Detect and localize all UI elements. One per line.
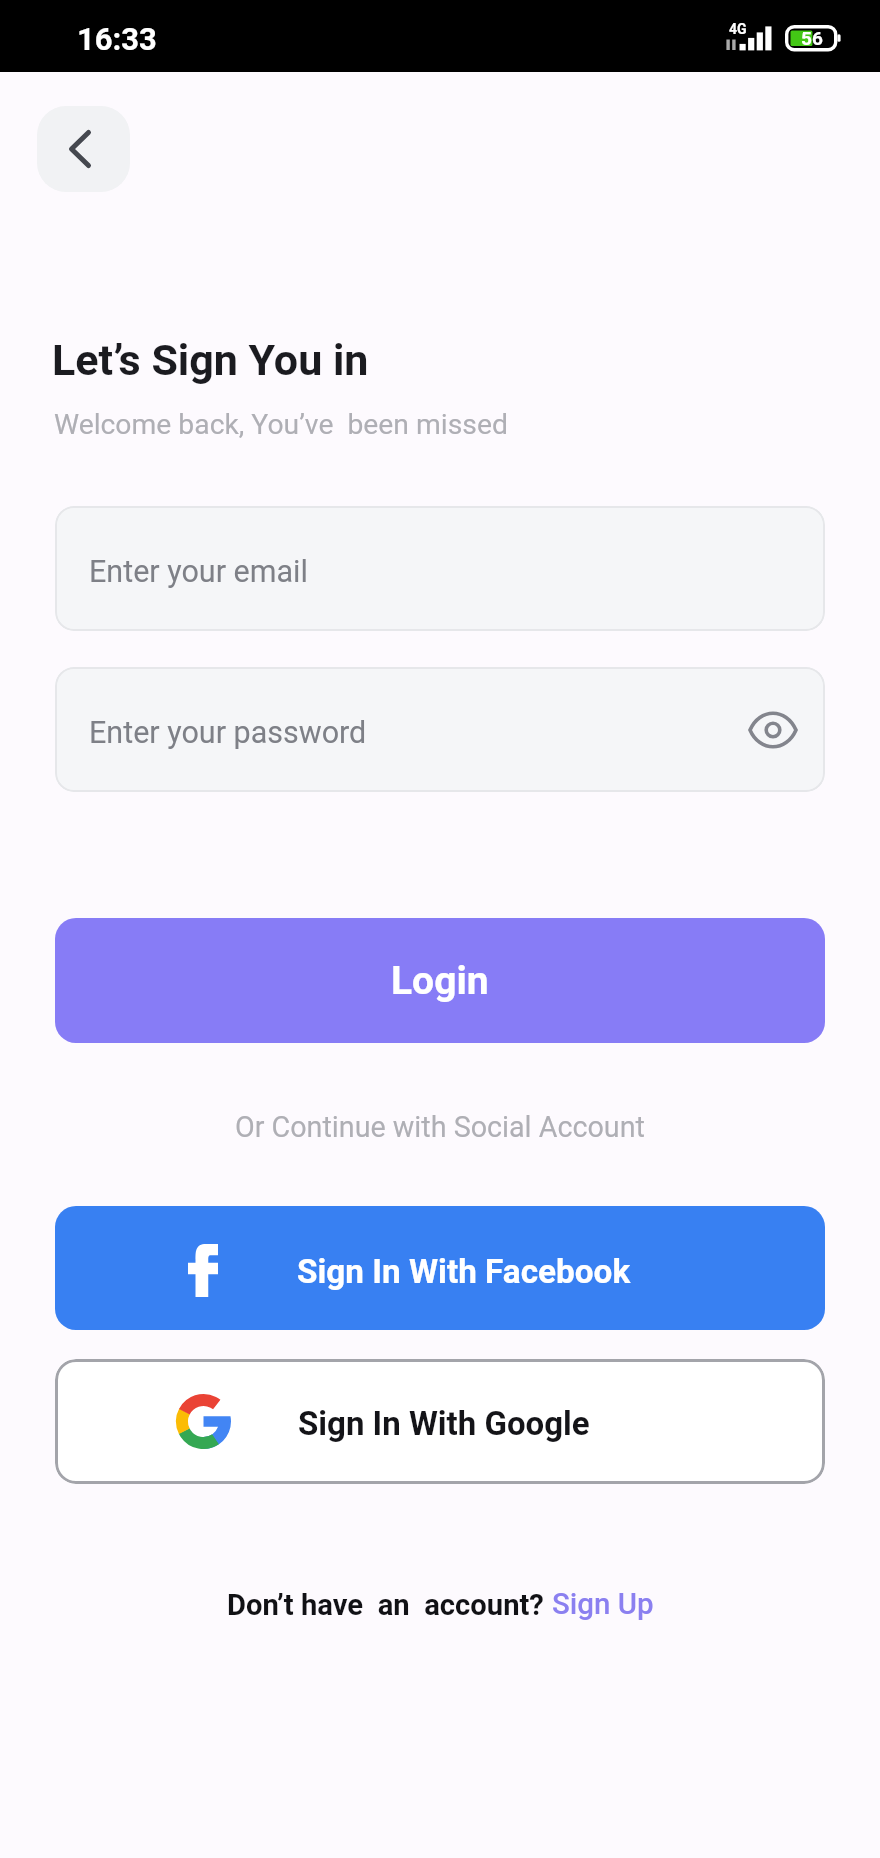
- button[interactable]: Sign In With Facebook: [55, 1206, 825, 1330]
- staticText: Sign In With Google: [298, 1404, 590, 1443]
- staticText: Login: [391, 958, 489, 1004]
- staticText: 16:33: [77, 21, 157, 57]
- staticText: Sign Up: [552, 1587, 654, 1622]
- staticText: Sign In With Facebook: [297, 1252, 631, 1291]
- staticText: Let’s Sign You in: [52, 335, 369, 385]
- button[interactable]: Show password: [742, 699, 804, 761]
- staticText: Enter your password: [89, 715, 367, 751]
- button[interactable]: Back: [37, 106, 130, 192]
- staticText: Enter your email: [89, 554, 308, 590]
- button[interactable]: Enter your email: [55, 506, 825, 631]
- staticText: 4G: [729, 21, 747, 37]
- staticText: Don’t have an account?: [227, 1588, 552, 1622]
- button[interactable]: Sign Up: [552, 1587, 654, 1622]
- button[interactable]: Sign In With Google: [55, 1359, 825, 1484]
- staticText: Welcome back, You’ve been missed: [54, 408, 508, 441]
- button[interactable]: Login: [55, 918, 825, 1043]
- staticText: 56: [801, 27, 823, 49]
- button[interactable]: Enter your password: [55, 667, 825, 792]
- other: Signal and battery: [720, 10, 850, 60]
- staticText: Or Continue with Social Account: [235, 1110, 645, 1144]
